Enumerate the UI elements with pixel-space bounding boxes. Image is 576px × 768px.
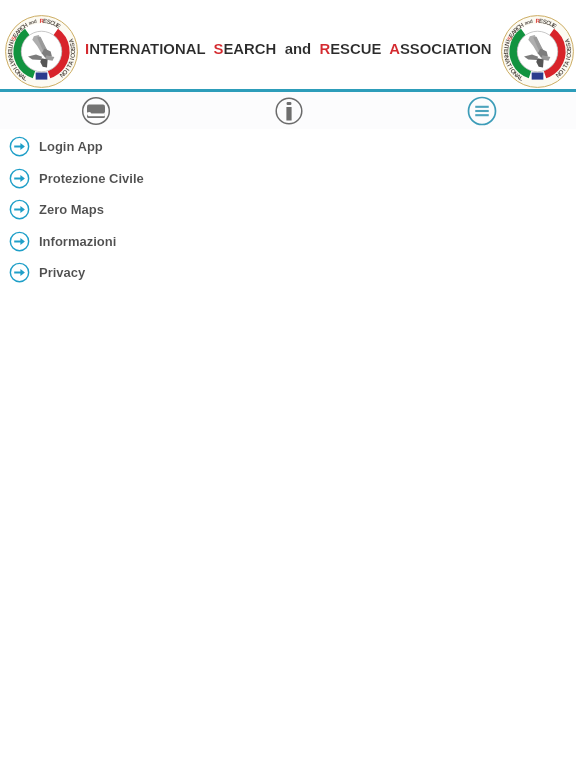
button[interactable]: Catalogo: [78, 93, 114, 129]
button[interactable]: Login App: [0, 131, 576, 162]
button[interactable]: Privacy: [0, 257, 576, 288]
staticText: INTERNATIONAL SEARCH and RESCUE ASSOCIAT…: [85, 41, 492, 58]
staticText: Informazioni: [39, 234, 117, 249]
staticText: Privacy: [39, 265, 86, 280]
button[interactable]: Zero Maps: [0, 194, 576, 225]
staticText: Zero Maps: [39, 202, 105, 217]
staticText: Login App: [39, 139, 103, 154]
button[interactable]: Protezione Civile: [0, 163, 576, 194]
button[interactable]: Menu: [464, 93, 500, 129]
button[interactable]: Informazioni: [271, 93, 307, 129]
staticText: Protezione Civile: [39, 171, 144, 186]
button[interactable]: Informazioni: [0, 226, 576, 257]
